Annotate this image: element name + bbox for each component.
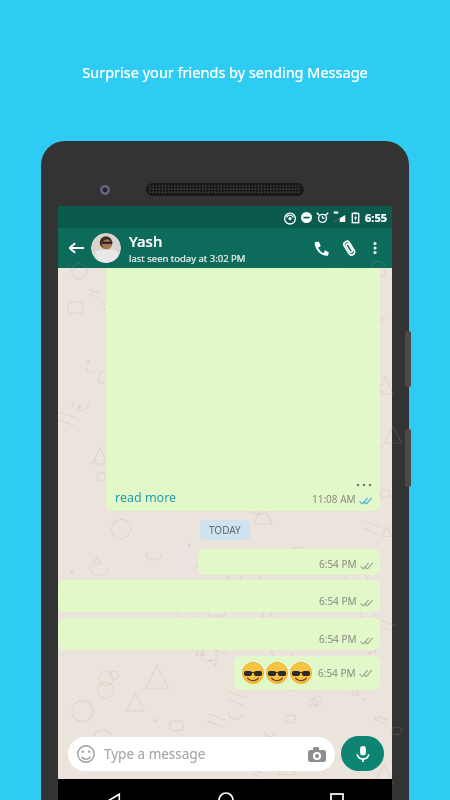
button[interactable]: Recent apps — [281, 779, 392, 800]
button[interactable]: 6:54 PM — [58, 618, 380, 650]
staticText: Type a message — [104, 745, 206, 763]
button[interactable]: 6:54 PM — [234, 656, 380, 690]
button[interactable]: Contact photo — [91, 233, 121, 263]
staticText: TODAY — [209, 523, 241, 537]
staticText: 11:08 AM — [312, 492, 356, 506]
button[interactable]: TODAY — [200, 520, 250, 540]
staticText: 6:54 PM — [319, 557, 357, 571]
staticText: 6:55 — [365, 210, 387, 225]
other: Emoji — [77, 745, 95, 763]
button[interactable]: More options — [363, 236, 387, 260]
staticText: Yash — [129, 231, 163, 251]
staticText: Surprise your friends by sending Message — [0, 62, 450, 82]
staticText: 6:54 PM — [318, 666, 356, 680]
button[interactable]: 6:54 PM — [58, 580, 380, 612]
button[interactable]: Yash — [129, 231, 307, 265]
staticText: last seen today at 3:02 PM — [129, 252, 246, 265]
button[interactable]: Call — [307, 234, 335, 262]
button[interactable]: Attach — [335, 234, 363, 262]
button[interactable]: Emoji — [68, 737, 335, 771]
button[interactable]: Camera — [308, 747, 326, 762]
button[interactable]: Back — [58, 779, 170, 800]
staticText: 6:54 PM — [319, 594, 357, 608]
button[interactable]: read more — [115, 489, 177, 506]
button[interactable]: 6:54 PM — [198, 549, 380, 575]
button[interactable]: Voice message — [341, 736, 384, 771]
button[interactable]: read more — [106, 268, 380, 511]
button[interactable]: Home — [170, 779, 281, 800]
staticText: 6:54 PM — [319, 632, 357, 646]
button[interactable]: Back — [63, 235, 89, 261]
